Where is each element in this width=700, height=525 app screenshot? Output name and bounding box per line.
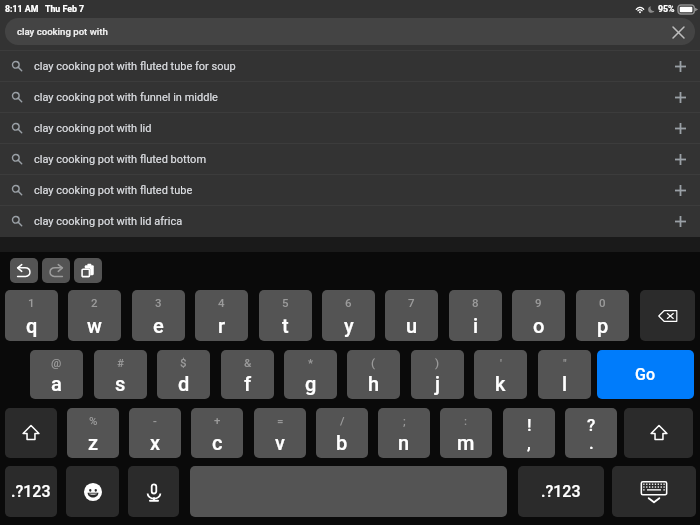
button[interactable]: Voice input — [128, 466, 179, 517]
button[interactable]: 8 — [449, 290, 502, 341]
staticText: r — [218, 314, 226, 337]
staticText: 3 — [155, 296, 162, 309]
button[interactable]: & — [221, 350, 274, 399]
staticText: $ — [180, 356, 187, 369]
button[interactable]: Insert suggestion — [660, 175, 700, 205]
staticText: ) — [435, 356, 440, 369]
staticText: i — [473, 314, 479, 337]
button[interactable]: clay cooking pot with funnel in middle — [0, 82, 700, 112]
staticText: 8:11 AM — [5, 4, 39, 14]
button[interactable]: clay cooking pot with lid — [0, 113, 700, 143]
staticText: % — [89, 414, 98, 427]
button[interactable]: clay cooking pot with fluted tube — [0, 175, 700, 205]
button[interactable]: Insert suggestion — [660, 206, 700, 236]
button[interactable]: ( — [347, 350, 400, 399]
button[interactable]: + — [191, 408, 243, 458]
button[interactable]: " — [538, 350, 591, 399]
staticText: ? — [587, 415, 596, 435]
staticText: w — [87, 314, 102, 337]
button[interactable]: clay cooking pot with fluted tube for so… — [0, 51, 700, 81]
button[interactable]: : — [440, 408, 492, 458]
staticText: g — [305, 372, 317, 395]
staticText: clay cooking pot with lid africa — [34, 215, 183, 228]
staticText: clay cooking pot with funnel in middle — [34, 91, 218, 104]
button[interactable]: Insert suggestion — [660, 51, 700, 81]
staticText: 6 — [345, 296, 352, 309]
button[interactable]: $ — [157, 350, 210, 399]
staticText: 5 — [282, 296, 289, 309]
button[interactable]: Shift — [5, 408, 57, 458]
button[interactable]: clay cooking pot with fluted bottom — [0, 144, 700, 174]
button[interactable]: # — [94, 350, 147, 399]
staticText: l — [562, 372, 568, 395]
button[interactable]: 0 — [576, 290, 629, 341]
button[interactable]: Backspace — [640, 290, 695, 341]
staticText: t — [282, 314, 289, 337]
button[interactable]: Undo — [10, 258, 38, 283]
button[interactable]: 7 — [385, 290, 438, 341]
button[interactable]: 3 — [132, 290, 185, 341]
button[interactable]: ' — [474, 350, 527, 399]
staticText: ' — [500, 356, 502, 369]
button[interactable]: Insert suggestion — [660, 82, 700, 112]
staticText: 7 — [408, 296, 415, 309]
staticText: / — [340, 414, 345, 427]
staticText: 4 — [218, 296, 225, 309]
staticText: q — [26, 314, 38, 337]
button[interactable]: ! — [503, 408, 555, 458]
button[interactable]: = — [254, 408, 306, 458]
staticText: b — [336, 431, 348, 454]
staticText: 9 — [535, 296, 542, 309]
button[interactable]: Redo — [42, 258, 70, 283]
staticText: " — [563, 356, 567, 369]
staticText: f — [244, 372, 252, 395]
staticText: Thu Feb 7 — [45, 4, 85, 14]
staticText: - — [153, 414, 157, 427]
staticText: d — [178, 372, 190, 395]
staticText: ; — [403, 414, 406, 427]
staticText: ! — [527, 415, 532, 435]
staticText: Go — [635, 365, 656, 384]
button[interactable]: ? — [565, 408, 617, 458]
button[interactable]: Clear query — [667, 21, 689, 43]
staticText: y — [344, 314, 354, 337]
staticText: c — [212, 431, 223, 454]
button[interactable]: / — [316, 408, 368, 458]
staticText: clay cooking pot with fluted tube for so… — [34, 60, 236, 73]
staticText: , — [527, 433, 531, 453]
button[interactable]: 2 — [68, 290, 121, 341]
staticText: * — [308, 356, 314, 369]
staticText: j — [435, 372, 441, 395]
button[interactable]: clay cooking pot with — [5, 18, 695, 45]
staticText: : — [464, 414, 468, 427]
button[interactable]: % — [67, 408, 119, 458]
button[interactable]: @ — [30, 350, 83, 399]
button[interactable]: 9 — [512, 290, 565, 341]
button[interactable]: .?123 — [5, 466, 57, 517]
button[interactable]: ; — [378, 408, 430, 458]
button[interactable]: * — [284, 350, 337, 399]
button[interactable]: 6 — [322, 290, 375, 341]
staticText: a — [51, 372, 62, 395]
staticText: n — [398, 431, 410, 454]
staticText: 2 — [91, 296, 98, 309]
button[interactable]: 5 — [259, 290, 312, 341]
button[interactable]: Emoji — [66, 466, 119, 517]
button[interactable]: .?123 — [518, 466, 604, 517]
button[interactable]: 1 — [5, 290, 58, 341]
button[interactable]: Caps lock — [624, 408, 693, 458]
button[interactable]: Clipboard — [74, 258, 102, 283]
button[interactable]: Insert suggestion — [660, 144, 700, 174]
staticText: 0 — [599, 296, 606, 309]
button[interactable]: Hide keyboard — [612, 466, 696, 517]
button[interactable]: Go — [597, 350, 694, 399]
button[interactable]: - — [129, 408, 181, 458]
button[interactable]: clay cooking pot with lid africa — [0, 206, 700, 236]
staticText: clay cooking pot with fluted tube — [34, 184, 193, 197]
button[interactable]: 4 — [195, 290, 248, 341]
button[interactable]: ) — [411, 350, 464, 399]
button[interactable]: Insert suggestion — [660, 113, 700, 143]
staticText: e — [153, 314, 164, 337]
staticText: h — [368, 372, 380, 395]
